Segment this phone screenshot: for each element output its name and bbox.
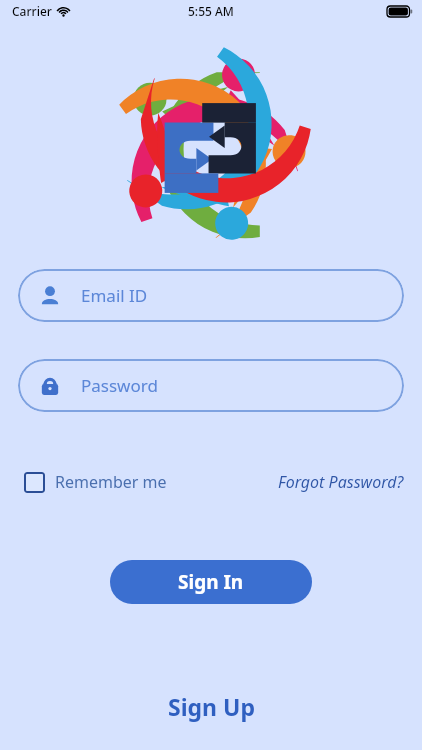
button[interactable]: Sign Up xyxy=(0,691,422,750)
button[interactable]: Remember me xyxy=(24,467,167,497)
staticText: Remember me xyxy=(55,471,167,493)
button[interactable]: Forgot Password? xyxy=(278,467,404,497)
button[interactable]: Email ID xyxy=(18,269,404,322)
button[interactable]: Password xyxy=(18,359,404,412)
button[interactable]: Sign In xyxy=(110,560,312,604)
staticText: Email ID xyxy=(81,284,148,307)
staticText: Forgot Password? xyxy=(278,471,404,493)
staticText: 5:55 AM xyxy=(188,3,234,19)
staticText: Sign In xyxy=(178,569,244,595)
staticText: Carrier xyxy=(12,3,52,19)
staticText: Password xyxy=(81,374,158,397)
staticText: Sign Up xyxy=(168,691,255,722)
